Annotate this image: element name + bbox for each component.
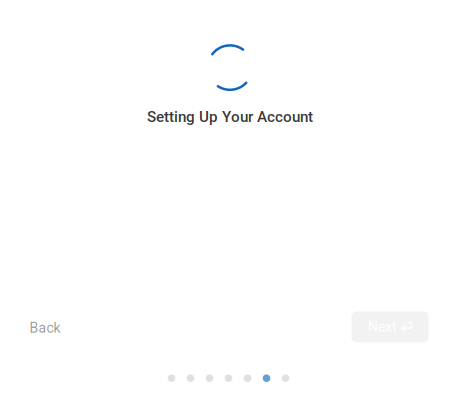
button[interactable]: Back	[19, 311, 69, 342]
staticText: Back	[29, 320, 60, 336]
staticText: Setting Up Your Account	[147, 108, 313, 126]
staticText: Next	[368, 319, 397, 335]
